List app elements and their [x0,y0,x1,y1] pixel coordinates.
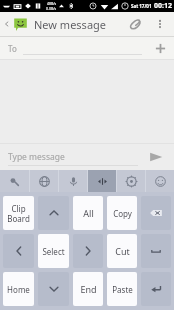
button[interactable]: Cut [107,234,137,268]
button[interactable]: More options [149,13,171,35]
button[interactable]: Cursor control [88,170,116,192]
staticText: Type message [8,151,65,163]
button[interactable]: All [73,196,103,230]
staticText: Cut [115,245,130,257]
button[interactable]: Clip Board [3,196,34,230]
staticText: Clip Board [7,203,30,224]
button[interactable]: Emoji [146,170,174,192]
button[interactable]: Send [144,145,168,169]
button[interactable]: Backspace [141,196,171,230]
button[interactable]: Back [0,12,113,36]
button[interactable]: Handwriting [0,170,29,192]
button[interactable]: Settings [117,170,145,192]
button[interactable]: Right [73,234,103,268]
button[interactable]: Paste [107,272,137,306]
button[interactable]: Language [30,170,58,192]
button[interactable]: Voice input [59,170,87,192]
staticText: Sat 17/01 [131,3,152,9]
button[interactable]: Space [141,234,171,268]
other: Back [4,21,10,27]
staticText: All [83,207,94,219]
button[interactable]: Home [3,272,34,306]
button[interactable]: End [73,272,103,306]
button[interactable]: Down [38,272,69,306]
button[interactable]: Select [38,234,69,268]
staticText: Copy [113,208,132,219]
button[interactable]: Copy [107,196,137,230]
staticText: Paste [112,284,133,295]
button[interactable]: Up [38,196,69,230]
staticText: To [8,43,17,54]
button[interactable]: Attach [123,12,149,36]
button[interactable]: Left [3,234,34,268]
staticText: End [80,283,97,295]
staticText: 0.0B/s [46,6,57,11]
staticText: Select [42,246,65,257]
staticText: 48B/s [47,1,57,6]
staticText: New message [34,17,107,32]
button[interactable]: Add recipient [150,38,170,58]
button[interactable] [23,41,142,55]
staticText: 00:12 [154,1,172,11]
button[interactable]: Type message [8,148,138,166]
staticText: Home [7,284,30,295]
button[interactable]: Enter [141,272,171,306]
